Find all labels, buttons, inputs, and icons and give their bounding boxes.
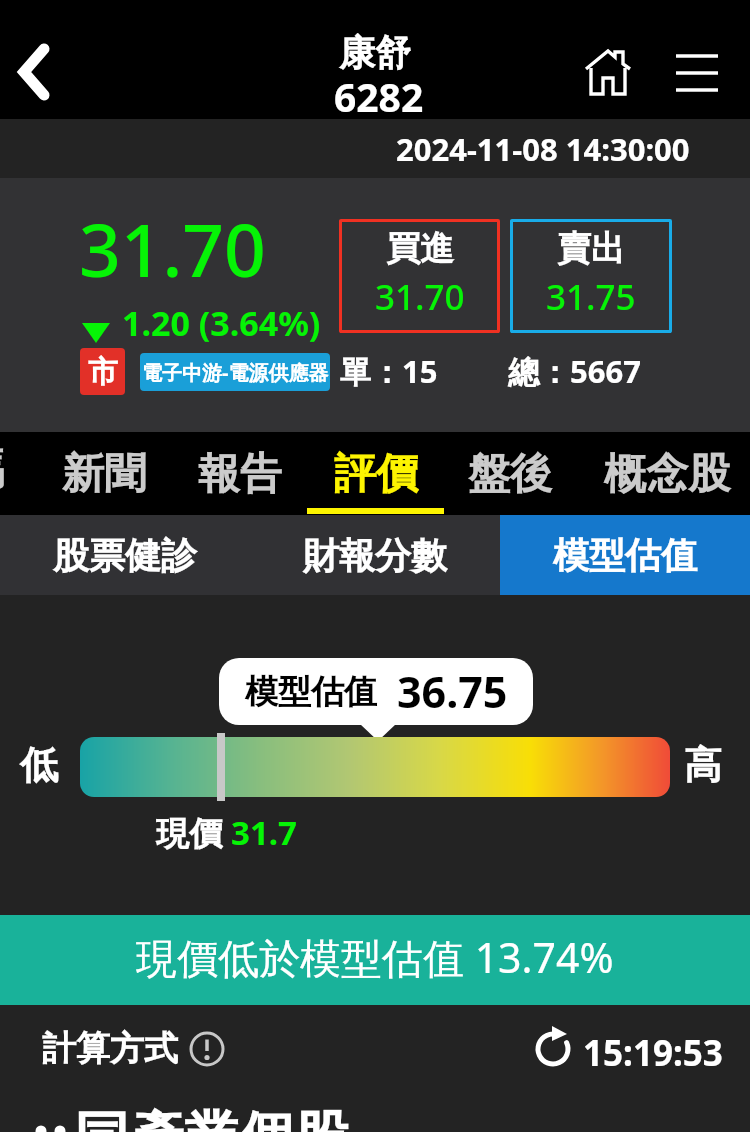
button[interactable]: 賣出 xyxy=(510,219,672,333)
staticText: 康舒 xyxy=(339,30,411,75)
button[interactable]: 報告 xyxy=(178,432,302,508)
staticText: 31.70 xyxy=(79,199,266,298)
button[interactable]: 新聞 xyxy=(40,432,168,508)
button[interactable] xyxy=(533,1029,573,1069)
staticText: 31.7 xyxy=(231,810,297,855)
staticText: 買進 xyxy=(386,227,454,270)
staticText: 低 xyxy=(20,741,58,789)
staticText: 計算方式 xyxy=(42,1027,178,1070)
button[interactable] xyxy=(583,49,635,97)
button[interactable]: 財報分數 xyxy=(250,515,500,595)
staticText: 概念股 xyxy=(604,448,730,501)
staticText: 模型估值 xyxy=(245,671,377,713)
staticText: 單：15 xyxy=(340,350,438,392)
staticText: 1.20 (3.64%) xyxy=(122,300,321,346)
staticText: 報告 xyxy=(198,448,282,501)
staticText: 模型估值 xyxy=(553,533,697,578)
button[interactable]: 評價 xyxy=(307,432,444,508)
staticText: 總：5667 xyxy=(508,350,641,392)
button[interactable]: 模型估值 xyxy=(500,515,750,595)
staticText: 市 xyxy=(88,353,118,391)
staticText: 31.75 xyxy=(546,273,636,321)
staticText: 15:19:53 xyxy=(583,1029,723,1077)
staticText: 現價 xyxy=(156,810,231,855)
staticText: 現價低於模型估值 13.74% xyxy=(136,929,614,985)
staticText: 同產業個股 xyxy=(74,1103,349,1132)
staticText: 賣出 xyxy=(557,227,625,270)
staticText: 股票健診 xyxy=(53,533,197,578)
staticText: 碼 xyxy=(0,444,4,497)
button[interactable] xyxy=(662,40,732,104)
button[interactable]: 股票健診 xyxy=(0,515,250,595)
button[interactable] xyxy=(0,0,70,119)
staticText: 6282 xyxy=(334,70,424,123)
button[interactable] xyxy=(189,1031,225,1067)
staticText: 評價 xyxy=(334,448,418,501)
button[interactable]: 盤後 xyxy=(448,432,572,508)
staticText: 新聞 xyxy=(62,448,146,501)
staticText: 財報分數 xyxy=(303,533,447,578)
button[interactable]: 概念股 xyxy=(584,432,750,508)
staticText: 盤後 xyxy=(468,448,552,501)
button[interactable]: 買進 xyxy=(339,219,500,333)
staticText: 31.70 xyxy=(375,273,465,321)
staticText: 2024-11-08 14:30:00 xyxy=(396,128,690,170)
staticText: 高 xyxy=(684,741,722,789)
staticText: 36.75 xyxy=(397,662,508,721)
staticText: 電子中游-電源供應器 xyxy=(142,359,329,386)
